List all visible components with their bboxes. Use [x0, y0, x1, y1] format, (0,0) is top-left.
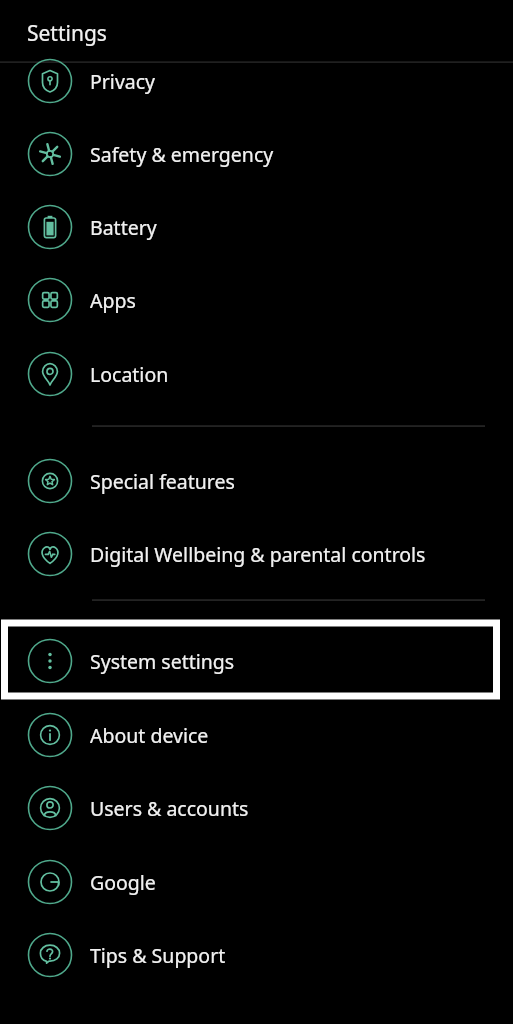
button[interactable]	[0, 445, 513, 517]
staticText: System settings	[90, 648, 235, 675]
staticText: Special features	[90, 468, 235, 495]
button[interactable]	[0, 518, 513, 590]
button[interactable]	[0, 118, 513, 190]
button[interactable]	[0, 846, 513, 918]
staticText: Safety & emergency	[90, 141, 274, 168]
button[interactable]	[0, 191, 513, 263]
button[interactable]	[0, 625, 513, 697]
button[interactable]	[0, 264, 513, 336]
button[interactable]	[0, 919, 513, 991]
button[interactable]	[0, 45, 513, 117]
staticText: Users & accounts	[90, 795, 249, 822]
staticText: About device	[90, 722, 209, 749]
button[interactable]	[0, 772, 513, 844]
staticText: Privacy	[90, 68, 156, 95]
staticText: Apps	[90, 287, 136, 314]
staticText: Settings	[27, 19, 107, 48]
staticText: Tips & Support	[90, 942, 226, 969]
staticText: Google	[90, 869, 156, 896]
staticText: Battery	[90, 214, 157, 241]
staticText: Location	[90, 361, 169, 388]
button[interactable]	[0, 338, 513, 410]
button[interactable]	[0, 699, 513, 771]
staticText: Digital Wellbeing & parental controls	[90, 541, 426, 568]
button[interactable]: Settings	[27, 19, 107, 48]
